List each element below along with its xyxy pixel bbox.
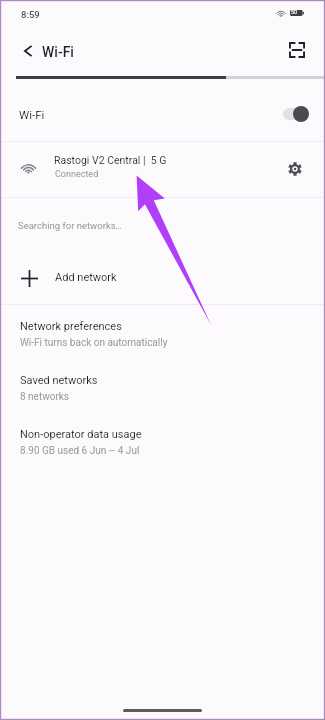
staticText: 8:59 xyxy=(21,9,40,20)
staticText: 8.90 GB used 6 Jun – 4 Jul xyxy=(20,445,140,457)
staticText: 8 networks xyxy=(20,391,70,403)
staticText: Wi-Fi turns back on automatically xyxy=(20,337,168,349)
staticText: Wi-Fi xyxy=(19,108,45,121)
button[interactable]: Add network xyxy=(0,252,325,304)
staticText: Rastogi V2 Central | 5 G xyxy=(54,154,167,166)
button[interactable]: Network settings xyxy=(279,153,311,185)
button[interactable]: Wi-Fi xyxy=(0,78,325,141)
button[interactable]: Back xyxy=(13,36,42,65)
button[interactable]: Non-operator data usage xyxy=(0,413,325,468)
staticText: Network preferences xyxy=(20,320,122,333)
staticText: Non-operator data usage xyxy=(20,428,142,441)
button[interactable]: Rastogi V2 Central | 5 G xyxy=(0,142,325,197)
staticText: 50 xyxy=(291,9,297,15)
staticText: Connected xyxy=(55,169,99,180)
button[interactable]: Network preferences xyxy=(0,305,325,360)
staticText: Wi-Fi xyxy=(42,44,74,60)
staticText: Saved networks xyxy=(20,374,98,387)
button[interactable]: Scan QR code xyxy=(281,34,313,66)
staticText: Searching for networks… xyxy=(18,220,122,231)
button[interactable]: Saved networks xyxy=(0,359,325,414)
staticText: Add network xyxy=(55,271,117,284)
